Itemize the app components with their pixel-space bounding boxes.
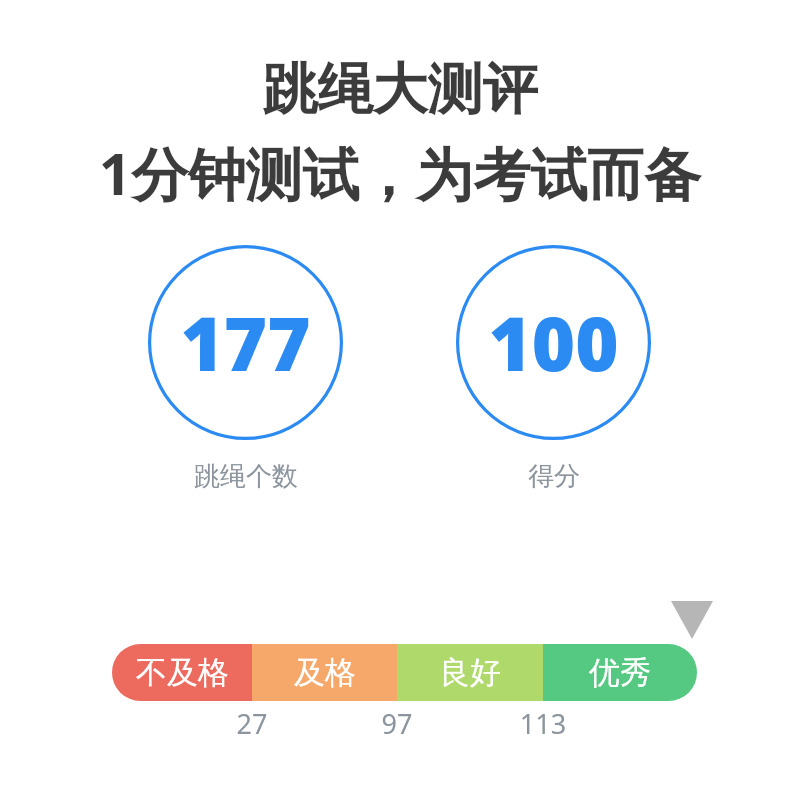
staticText: 177: [180, 292, 311, 393]
staticText: 113: [493, 705, 593, 742]
staticText: 跳绳个数: [194, 460, 298, 493]
button[interactable]: 及格: [252, 644, 397, 701]
button[interactable]: 100: [456, 245, 651, 493]
staticText: 1分钟测试，为考试而备: [0, 134, 800, 212]
staticText: 100: [488, 292, 619, 393]
staticText: 良好: [439, 653, 501, 692]
staticText: 不及格: [136, 653, 229, 692]
staticText: 97: [347, 705, 447, 742]
button[interactable]: 177: [148, 245, 343, 493]
button[interactable]: 不及格: [112, 644, 252, 701]
staticText: 跳绳大测评: [0, 55, 800, 124]
staticText: 及格: [294, 653, 356, 692]
button[interactable]: 良好: [397, 644, 543, 701]
staticText: 得分: [528, 460, 580, 493]
other: Level indicator: 优秀: [671, 601, 713, 639]
button[interactable]: 优秀: [543, 644, 697, 701]
staticText: 优秀: [589, 653, 651, 692]
staticText: 27: [202, 705, 302, 742]
button[interactable]: 不及格: [112, 644, 697, 701]
